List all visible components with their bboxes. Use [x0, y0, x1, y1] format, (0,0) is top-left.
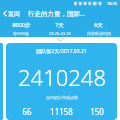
staticText: 当日累计完成步数 [46, 95, 78, 100]
staticText: 团队第2天/2017.03.21 [36, 48, 87, 55]
button[interactable]: 11158 [44, 106, 79, 117]
button[interactable]: 8000步 [2, 20, 40, 37]
staticText: 每日目标 [13, 31, 29, 36]
button[interactable]: 团队第2天/2017.03.21 [6, 43, 117, 120]
button[interactable]: 150 [79, 106, 114, 117]
staticText: 150 [90, 106, 104, 117]
button[interactable]: 6天 [79, 20, 118, 37]
staticText: 7天 [55, 21, 64, 29]
staticText: 结束剩余时间 [87, 31, 111, 36]
staticText: 66 [22, 106, 32, 117]
staticText: 15:15 [107, 1, 118, 6]
staticText: 11158 [50, 106, 73, 117]
staticText: 返回 [8, 10, 20, 18]
staticText: 2410248 [18, 62, 106, 92]
button[interactable]: 7天 [40, 20, 79, 37]
staticText: 8000步 [12, 21, 31, 29]
button[interactable]: 返回 [3, 7, 20, 20]
button[interactable]: 66 [9, 106, 44, 117]
staticText: 行走的力量，国际… [28, 9, 86, 18]
staticText: 6天 [94, 21, 103, 29]
staticText: 03.20-03.26 [49, 31, 71, 36]
